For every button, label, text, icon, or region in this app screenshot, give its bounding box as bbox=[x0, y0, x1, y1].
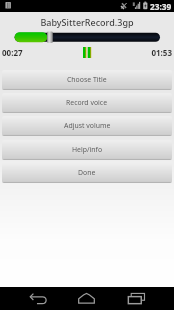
button[interactable]: Record voice bbox=[2, 93, 172, 113]
button[interactable]: Seek bbox=[0, 30, 174, 46]
button[interactable]: Choose Title bbox=[2, 70, 172, 90]
button[interactable]: Recents bbox=[119, 287, 153, 310]
staticText: Done bbox=[78, 168, 96, 177]
staticText: Help/info bbox=[72, 145, 103, 154]
button[interactable]: Home bbox=[69, 287, 103, 310]
staticText: Adjust volume bbox=[64, 121, 111, 130]
button[interactable]: Adjust volume bbox=[2, 116, 172, 136]
button[interactable]: Back bbox=[21, 287, 55, 310]
staticText: BabySitterRecord.3gp bbox=[0, 16, 174, 28]
staticText: 23:39 bbox=[150, 1, 172, 12]
button[interactable]: Pause bbox=[80, 45, 95, 60]
staticText: Choose Title bbox=[67, 75, 107, 84]
staticText: Record voice bbox=[66, 98, 108, 107]
staticText: 00:27 bbox=[2, 47, 23, 58]
button[interactable]: Help/info bbox=[2, 140, 172, 160]
button[interactable]: Done bbox=[2, 163, 172, 183]
staticText: 01:53 bbox=[0, 47, 172, 58]
